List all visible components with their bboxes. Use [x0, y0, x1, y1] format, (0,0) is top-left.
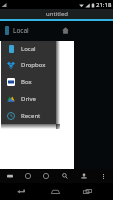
staticText: Local	[13, 26, 29, 35]
staticText: Dropbox	[21, 61, 46, 69]
button[interactable]: Home	[57, 21, 73, 40]
button[interactable]: Box	[1, 73, 56, 90]
button[interactable]: Local	[1, 41, 56, 57]
button[interactable]: Keyboard	[0, 169, 19, 183]
button[interactable]: Local	[0, 21, 35, 40]
staticText: untitled	[46, 10, 68, 18]
staticText: Local	[21, 45, 36, 53]
staticText: Recent	[21, 112, 41, 120]
button[interactable]: Redo	[37, 169, 55, 183]
staticText: Drive	[21, 95, 36, 103]
button[interactable]: Undo	[19, 169, 37, 183]
staticText: Box	[21, 78, 32, 86]
button[interactable]: Recents	[78, 183, 96, 200]
button[interactable]: Export	[74, 169, 94, 183]
button[interactable]: Recent	[1, 107, 56, 124]
button[interactable]: Search	[55, 169, 74, 183]
button[interactable]: More options	[94, 169, 113, 183]
staticText: 21:18	[96, 1, 112, 9]
button[interactable]: Drive	[1, 90, 56, 107]
button[interactable]: Dropbox	[1, 57, 56, 73]
button[interactable]: Back	[12, 183, 30, 200]
button[interactable]: Home	[46, 183, 64, 200]
